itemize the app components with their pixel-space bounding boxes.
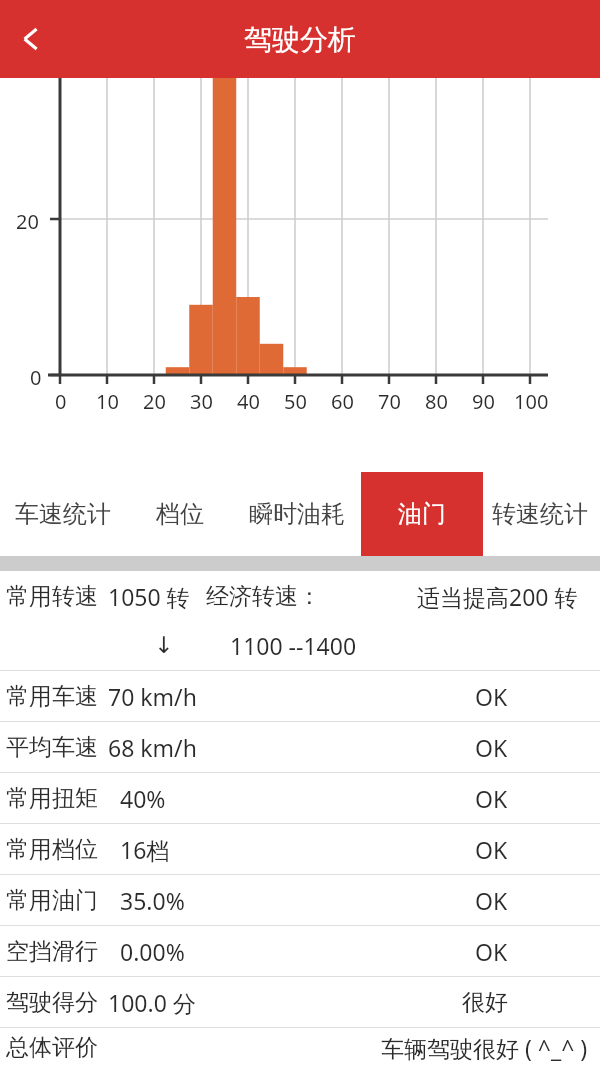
staticText: 90	[472, 388, 495, 415]
staticText: 80	[425, 388, 448, 415]
staticText: 1100 --1400	[230, 630, 357, 661]
staticText: 常用转速	[6, 582, 98, 611]
staticText: 70 km/h	[108, 681, 197, 712]
staticText: 瞬时油耗	[249, 499, 345, 529]
button[interactable]: 车速统计	[15, 472, 111, 556]
staticText: OK	[475, 732, 508, 763]
staticText: 常用档位	[6, 835, 98, 864]
staticText: 0	[30, 364, 42, 391]
staticText: 68 km/h	[108, 732, 197, 763]
staticText: 30	[190, 388, 213, 415]
staticText: 经济转速：	[206, 582, 321, 611]
staticText: 40%	[120, 783, 166, 814]
staticText: 10	[96, 388, 119, 415]
staticText: 空挡滑行	[6, 937, 98, 966]
staticText: 常用扭矩	[6, 784, 98, 813]
staticText: 70	[378, 388, 401, 415]
button[interactable]: 驾驶得分	[0, 977, 600, 1027]
staticText: OK	[475, 885, 508, 916]
button[interactable]: 常用扭矩	[0, 773, 600, 823]
staticText: 20	[143, 388, 166, 415]
staticText: 1050 转	[108, 581, 190, 612]
button[interactable]: 常用油门	[0, 875, 600, 925]
staticText: 0.00%	[120, 936, 185, 967]
button[interactable]: 平均车速	[0, 722, 600, 772]
button[interactable]: 瞬时油耗	[249, 472, 345, 556]
button[interactable]: 档位	[156, 472, 204, 556]
staticText: 车辆驾驶很好 ( ^_^ )	[381, 1032, 588, 1063]
button[interactable]: 常用转速	[0, 571, 600, 670]
staticText: 驾驶分析	[244, 22, 356, 57]
staticText: 60	[331, 388, 354, 415]
staticText: 0	[55, 388, 67, 415]
staticText: 油门	[398, 499, 446, 529]
staticText: OK	[475, 834, 508, 865]
staticText: OK	[475, 936, 508, 967]
button[interactable]: 总体评价	[0, 1028, 600, 1067]
staticText: 档位	[156, 499, 204, 529]
staticText: 100.0 分	[108, 987, 196, 1018]
staticText: 35.0%	[120, 885, 185, 916]
staticText: 驾驶得分	[6, 988, 98, 1017]
staticText: 常用油门	[6, 886, 98, 915]
button[interactable]: 空挡滑行	[0, 926, 600, 976]
button[interactable]: Back	[0, 0, 66, 78]
button[interactable]: 常用档位	[0, 824, 600, 874]
staticText: 总体评价	[6, 1033, 98, 1062]
button[interactable]: 油门	[361, 472, 483, 556]
staticText: 常用车速	[6, 682, 98, 711]
staticText: 平均车速	[6, 733, 98, 762]
staticText: 50	[284, 388, 307, 415]
staticText: 16档	[120, 834, 170, 865]
staticText: OK	[475, 783, 508, 814]
staticText: 转速统计	[492, 499, 588, 529]
staticText: 车速统计	[15, 499, 111, 529]
staticText: 40	[237, 388, 260, 415]
staticText: 100	[514, 388, 549, 415]
staticText: OK	[475, 681, 508, 712]
staticText: 很好	[462, 988, 508, 1017]
button[interactable]: 转速统计	[492, 472, 588, 556]
staticText: 20	[16, 208, 39, 235]
button[interactable]: 常用车速	[0, 671, 600, 721]
staticText: ↓	[154, 632, 174, 659]
staticText: 适当提高200 转	[417, 581, 578, 612]
